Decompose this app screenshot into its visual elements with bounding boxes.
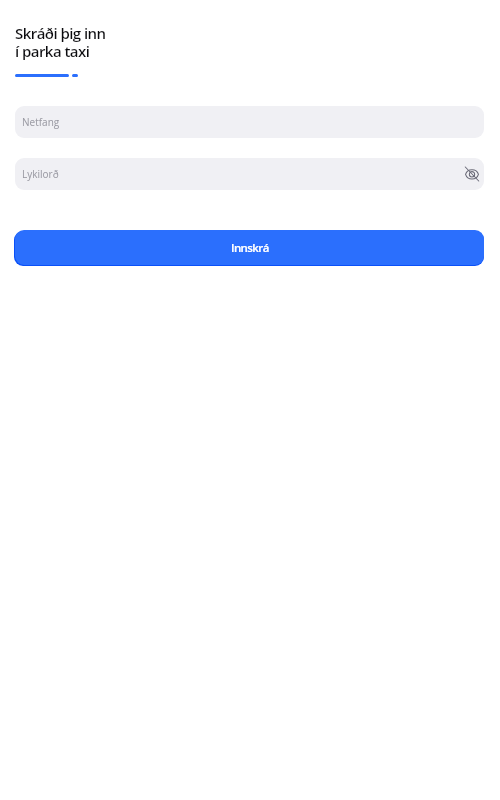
staticText: Lykilorð [22, 167, 59, 181]
staticText: í parka taxi [15, 41, 90, 61]
button[interactable]: Show password [461, 163, 483, 185]
button[interactable]: Innskrá [15, 230, 484, 265]
button[interactable]: Lykilorð [15, 158, 484, 190]
button[interactable]: Netfang [15, 106, 484, 138]
staticText: Netfang [22, 115, 60, 129]
staticText: Innskrá [231, 240, 269, 256]
staticText: Skráði þig inn [15, 23, 106, 43]
